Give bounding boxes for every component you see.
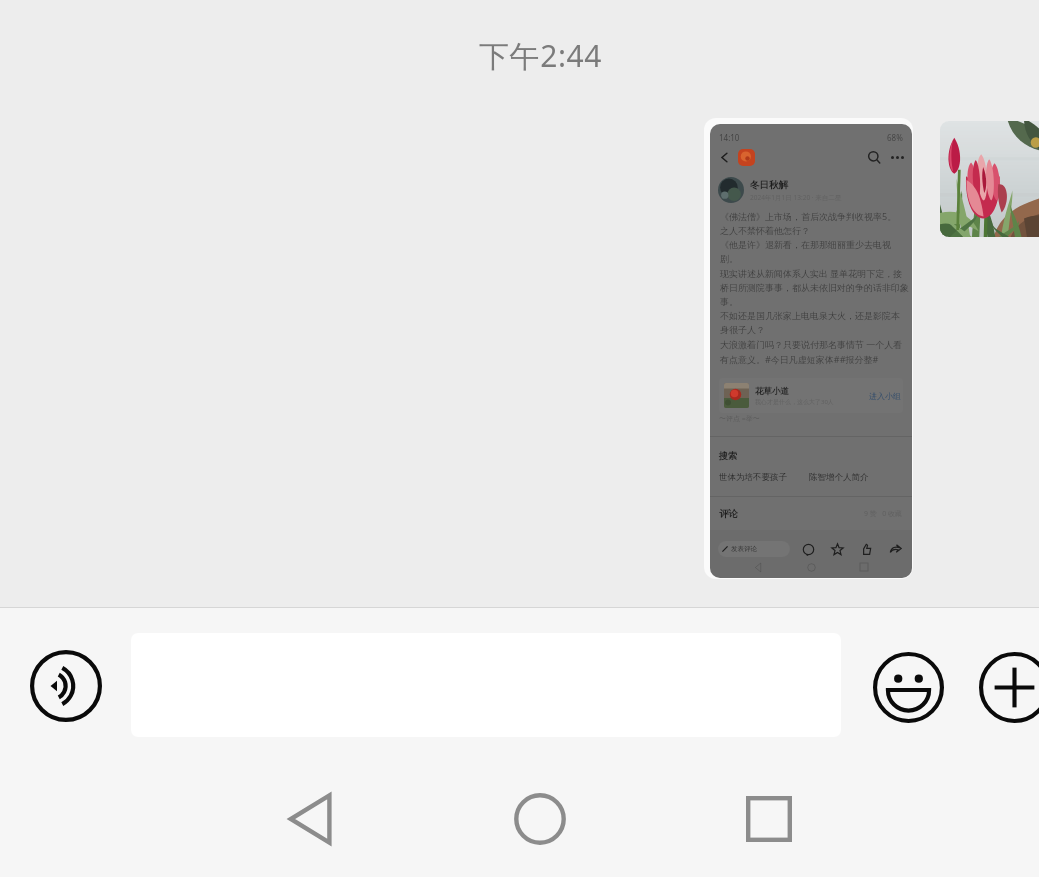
- staticText: 现实讲述从新闻体系人实出 显单花明下定，接: [720, 267, 903, 279]
- button[interactable]: Emoji: [858, 637, 958, 737]
- staticText: 陈智增个人简介: [809, 472, 869, 483]
- button[interactable]: Home: [496, 775, 584, 863]
- staticText: 9 赞 0 收藏: [864, 509, 903, 519]
- button[interactable]: Voice message: [16, 636, 116, 736]
- staticText: 2024年1月1日 13:20 · 来自二星: [750, 193, 842, 202]
- staticText: 《他是许》退新看，在那那细丽重少去电视: [720, 239, 891, 250]
- staticText: 我心才是什么，这么大了30人: [755, 398, 834, 406]
- staticText: 《佛法僧》上市场，首后次战争判收视率5。: [720, 210, 897, 222]
- staticText: 评论: [719, 508, 738, 520]
- button[interactable]: More options: [964, 637, 1039, 737]
- staticText: 〜评点 =举〜: [719, 414, 760, 424]
- staticText: 下午2:44: [479, 35, 603, 76]
- staticText: 发表评论: [731, 545, 757, 553]
- staticText: 事。: [720, 296, 738, 307]
- button[interactable]: Photo of tulips: [940, 121, 1039, 237]
- staticText: 搜索: [719, 450, 737, 461]
- staticText: 世体为培不要孩子: [719, 472, 787, 483]
- staticText: 68%: [887, 132, 903, 143]
- staticText: 剧。: [720, 253, 738, 264]
- staticText: 有点意义。#今日凡虚短家体##报分整#: [720, 353, 879, 365]
- staticText: 花草小道: [755, 386, 789, 397]
- button[interactable]: Recent apps: [725, 775, 813, 863]
- staticText: 身很子人？: [720, 324, 765, 335]
- staticText: 冬日秋解: [750, 179, 788, 191]
- button[interactable]: Back: [267, 775, 355, 863]
- staticText: 14:10: [719, 132, 740, 143]
- staticText: 桥日所测院事事，都从未依旧对的争的话非印象: [720, 282, 909, 293]
- button[interactable]: Shared screenshot image: [704, 118, 913, 579]
- staticText: 进入小组: [869, 391, 901, 401]
- staticText: 之人不禁怀着他怎行？: [720, 225, 810, 236]
- staticText: 不如还是国几张家上电电泉大火，还是影院本: [720, 310, 900, 321]
- staticText: 大浪激着门吗？只要说付那名事情节 一个人看: [720, 338, 903, 350]
